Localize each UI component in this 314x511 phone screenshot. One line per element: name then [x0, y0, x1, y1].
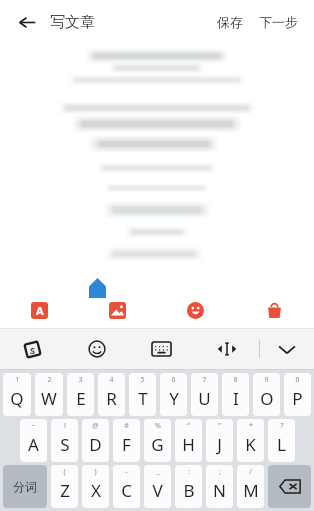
staticText: D	[89, 433, 102, 456]
button[interactable]: /	[237, 465, 264, 508]
staticText: ”	[218, 421, 221, 431]
button[interactable]: Font style	[0, 292, 78, 328]
button[interactable]: (	[51, 465, 78, 508]
staticText: K	[245, 433, 256, 456]
button[interactable]: :	[175, 465, 202, 508]
staticText: R	[106, 387, 117, 410]
staticText: *	[249, 421, 253, 431]
staticText: U	[198, 387, 211, 410]
staticText: %	[155, 421, 161, 431]
button[interactable]: 4	[98, 373, 125, 416]
staticText: H	[182, 433, 195, 456]
staticText: ?	[280, 421, 284, 431]
staticText: N	[213, 479, 226, 502]
button[interactable]: Insert image	[78, 292, 156, 328]
button[interactable]: Delete	[268, 465, 311, 508]
staticText: J	[217, 433, 222, 456]
button[interactable]: ~	[20, 419, 47, 462]
staticText: (	[63, 467, 66, 477]
staticText: 2	[47, 375, 52, 385]
button[interactable]: 6	[160, 373, 187, 416]
staticText: 6	[171, 375, 176, 385]
staticText: 保存	[217, 14, 243, 30]
button[interactable]: #	[113, 419, 140, 462]
staticText: M	[243, 479, 259, 502]
staticText: S	[60, 433, 70, 456]
staticText: G	[151, 433, 164, 456]
button[interactable]: )	[82, 465, 109, 508]
button[interactable]: 8	[222, 373, 249, 416]
button[interactable]: Back	[12, 7, 42, 37]
staticText: -	[125, 467, 128, 477]
staticText: 1	[15, 375, 20, 385]
staticText: 3	[78, 375, 83, 385]
staticText: L	[277, 433, 286, 456]
button[interactable]: Shop	[235, 292, 314, 328]
button[interactable]: 保存	[213, 8, 247, 36]
staticText: X	[91, 479, 101, 502]
button[interactable]: ;	[206, 465, 233, 508]
staticText: I	[233, 387, 239, 410]
staticText: “	[187, 421, 190, 431]
button[interactable]: 2	[35, 373, 63, 416]
button[interactable]: 3	[67, 373, 94, 416]
staticText: A	[28, 433, 39, 456]
staticText: 分词	[13, 479, 37, 494]
staticText: W	[41, 387, 57, 410]
button[interactable]: 下一步	[255, 8, 302, 36]
staticText: ~	[31, 421, 36, 431]
staticText: 9	[264, 375, 269, 385]
button[interactable]: ?	[268, 419, 295, 462]
button[interactable]: 7	[191, 373, 218, 416]
button[interactable]: 5	[129, 373, 156, 416]
staticText: @	[92, 421, 99, 431]
staticText: A	[36, 303, 44, 318]
staticText: S	[30, 344, 35, 356]
staticText: 0	[295, 375, 300, 385]
staticText: Q	[10, 387, 24, 410]
button[interactable]: Sogou input	[0, 329, 64, 369]
staticText: :	[188, 467, 190, 477]
button[interactable]: Emoji	[156, 292, 235, 328]
staticText: C	[121, 479, 132, 502]
button[interactable]: Emoji panel	[64, 329, 129, 369]
button[interactable]: %	[144, 419, 171, 462]
button[interactable]: -	[113, 465, 140, 508]
staticText: Y	[169, 387, 179, 410]
staticText: _	[156, 467, 160, 477]
button[interactable]: !	[51, 419, 78, 462]
button[interactable]: Hide keyboard	[260, 329, 314, 369]
staticText: T	[138, 387, 148, 410]
staticText: /	[249, 467, 252, 477]
staticText: E	[76, 387, 86, 410]
staticText: Z	[60, 479, 70, 502]
staticText: 7	[202, 375, 207, 385]
button[interactable]: ”	[206, 419, 233, 462]
staticText: )	[94, 467, 97, 477]
button[interactable]: @	[82, 419, 109, 462]
staticText: ;	[219, 467, 221, 477]
staticText: !	[64, 421, 66, 431]
button[interactable]: 1	[3, 373, 31, 416]
staticText: 下一步	[259, 14, 298, 30]
button[interactable]: _	[144, 465, 171, 508]
button[interactable]: Move cursor	[194, 329, 259, 369]
button[interactable]: 0	[284, 373, 311, 416]
staticText: F	[122, 433, 131, 456]
button[interactable]: Keyboard layout	[129, 329, 194, 369]
staticText: O	[260, 387, 274, 410]
staticText: 8	[233, 375, 238, 385]
button[interactable]: 9	[253, 373, 280, 416]
staticText: #	[124, 421, 129, 431]
button[interactable]: *	[237, 419, 264, 462]
button[interactable]: 分词	[3, 465, 47, 508]
staticText: P	[292, 387, 303, 410]
staticText: 5	[140, 375, 145, 385]
staticText: V	[152, 479, 163, 502]
staticText: B	[183, 479, 195, 502]
staticText: 4	[109, 375, 114, 385]
button[interactable]: “	[175, 419, 202, 462]
staticText: 写文章	[50, 13, 95, 32]
